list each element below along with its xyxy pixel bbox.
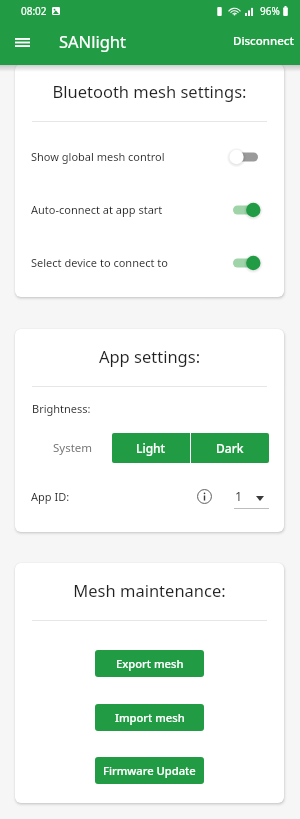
staticText: Show global mesh control bbox=[31, 149, 225, 164]
staticText: Light bbox=[136, 440, 166, 456]
staticText: App settings: bbox=[15, 345, 284, 367]
button[interactable]: Light bbox=[112, 433, 190, 463]
button[interactable]: Disconnect bbox=[227, 27, 300, 55]
staticText: Import mesh bbox=[115, 710, 185, 725]
staticText: Export mesh bbox=[116, 656, 184, 671]
button[interactable]: App ID info bbox=[193, 485, 215, 507]
staticText: 1 bbox=[235, 488, 243, 505]
staticText: Mesh maintenance: bbox=[15, 579, 284, 601]
button[interactable]: Auto-connect at app start bbox=[15, 183, 284, 236]
staticText: 96% bbox=[260, 4, 280, 18]
button[interactable]: System bbox=[45, 433, 101, 463]
button[interactable]: 1 bbox=[234, 481, 270, 511]
staticText: SANlight bbox=[59, 30, 126, 52]
staticText: Brightness: bbox=[32, 401, 91, 416]
button[interactable]: Import mesh bbox=[95, 704, 204, 731]
staticText: Select device to connect to bbox=[31, 255, 225, 270]
button[interactable]: Show global mesh control bbox=[15, 130, 284, 183]
staticText: Firmware Update bbox=[103, 763, 196, 778]
staticText: Bluetooth mesh settings: bbox=[15, 80, 284, 102]
button[interactable]: Firmware Update bbox=[95, 757, 204, 784]
staticText: System bbox=[53, 440, 93, 456]
button[interactable]: Dark bbox=[191, 433, 269, 463]
button[interactable]: Menu bbox=[7, 26, 37, 56]
button[interactable]: Select device to connect to bbox=[15, 236, 284, 289]
staticText: Dark bbox=[216, 440, 244, 456]
staticText: 08:02 bbox=[21, 4, 47, 18]
staticText: Auto-connect at app start bbox=[31, 202, 225, 217]
staticText: App ID: bbox=[31, 489, 70, 504]
staticText: Disconnect bbox=[233, 33, 294, 49]
button[interactable]: Export mesh bbox=[95, 650, 204, 677]
